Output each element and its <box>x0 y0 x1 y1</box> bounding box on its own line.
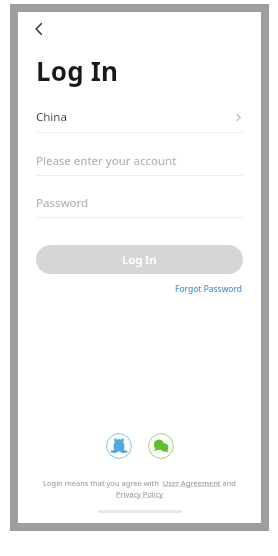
staticText: Please enter your account <box>36 153 177 169</box>
staticText: Forgot Password <box>175 283 243 295</box>
button[interactable]: Sign in with WeChat <box>148 433 174 459</box>
staticText: Login means that you agree with User Agr… <box>40 478 239 499</box>
staticText: Log In <box>36 53 119 88</box>
button[interactable]: Sign in with QQ <box>106 433 132 459</box>
button[interactable]: Login means that you agree with User Agr… <box>40 478 239 499</box>
staticText: Log In <box>122 252 157 268</box>
button[interactable]: China <box>18 106 261 133</box>
button[interactable]: Please enter your account <box>18 151 261 176</box>
staticText: Password <box>36 195 89 211</box>
button[interactable]: Back <box>25 15 53 43</box>
button[interactable]: Log In <box>36 245 243 274</box>
staticText: China <box>36 109 67 125</box>
button[interactable]: Forgot Password <box>175 283 243 295</box>
button[interactable]: Password <box>18 193 261 218</box>
